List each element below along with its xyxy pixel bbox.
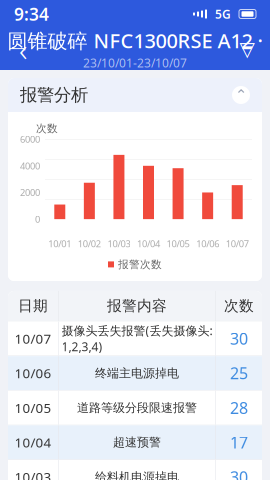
- button[interactable]: 10/04: [8, 425, 262, 459]
- staticText: 报警分析: [20, 84, 88, 106]
- staticText: 17: [230, 432, 248, 453]
- staticText: 终端主电源掉电: [95, 366, 179, 380]
- staticText: 2000: [20, 186, 40, 199]
- button[interactable]: 10/05: [8, 391, 262, 425]
- staticText: 9:34: [14, 2, 49, 25]
- staticText: 超速预警: [113, 435, 161, 450]
- staticText: 10/07: [14, 330, 51, 347]
- staticText: 10/04: [14, 433, 51, 451]
- staticText: 10/01: [48, 237, 71, 250]
- staticText: 30: [230, 466, 248, 480]
- button[interactable]: Filter: [230, 32, 264, 66]
- staticText: ▽: [239, 38, 254, 60]
- staticText: 10/03: [107, 237, 130, 250]
- staticText: 10/06: [196, 237, 219, 250]
- staticText: 日期: [18, 297, 48, 315]
- staticText: 10/05: [167, 237, 190, 250]
- staticText: 报警内容: [107, 297, 167, 315]
- staticText: 摄像头丢失报警(丢失摄像头:1,2,3,4): [61, 323, 212, 354]
- staticText: 次数: [224, 297, 254, 315]
- staticText: 报警次数: [118, 258, 162, 271]
- staticText: 6000: [20, 133, 40, 145]
- button[interactable]: 10/06: [8, 356, 262, 390]
- button[interactable]: 报警分析: [8, 78, 262, 112]
- staticText: 10/05: [14, 399, 51, 417]
- staticText: 10/04: [137, 237, 160, 250]
- staticText: 23/10/01-23/10/07: [83, 55, 187, 71]
- staticText: 10/06: [14, 364, 51, 382]
- button[interactable]: Back: [6, 32, 40, 66]
- staticText: 圆锥破碎 NFC1300RSE A12 ·: [7, 27, 262, 54]
- staticText: 25: [230, 362, 248, 384]
- staticText: 10/02: [78, 237, 101, 250]
- staticText: 4000: [20, 160, 40, 172]
- staticText: 给料机电源掉电: [95, 470, 179, 480]
- staticText: 0: [35, 213, 40, 225]
- staticText: 5G: [215, 6, 231, 22]
- staticText: 30: [230, 328, 248, 349]
- staticText: 次数: [36, 122, 58, 135]
- staticText: 28: [230, 397, 248, 418]
- staticText: 10/03: [14, 468, 51, 480]
- button[interactable]: 10/07: [8, 321, 262, 355]
- staticText: ⌃: [235, 87, 247, 103]
- button[interactable]: 10/03: [8, 460, 262, 480]
- staticText: 道路等级分段限速报警: [77, 400, 197, 415]
- staticText: 10/07: [226, 237, 249, 250]
- staticText: ‹: [19, 28, 27, 70]
